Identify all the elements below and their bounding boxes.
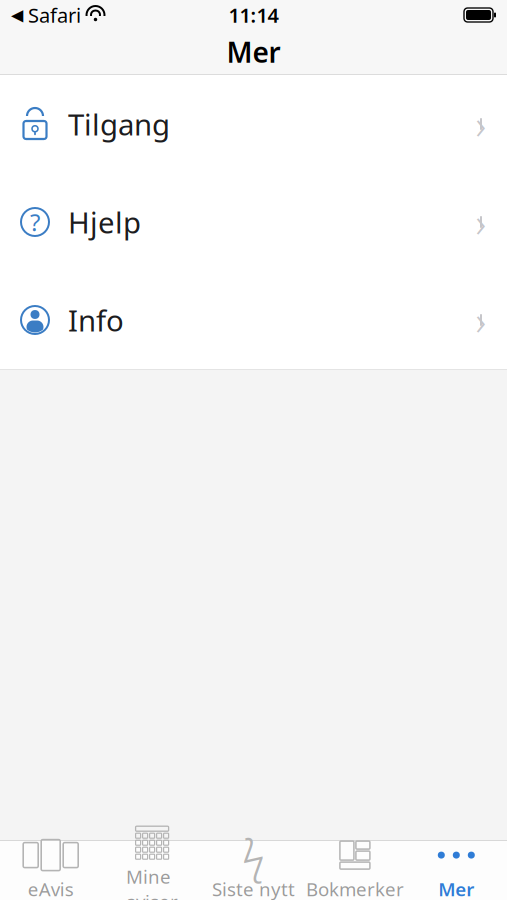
button[interactable]: Info (0, 271, 507, 369)
staticText: Tilgang (68, 104, 170, 143)
staticText: Bokmerker (306, 877, 404, 900)
staticText: Info (68, 300, 124, 339)
button[interactable]: Bokmerker (304, 841, 406, 900)
staticText: Mer (226, 33, 280, 71)
staticText: eAvis (28, 877, 74, 900)
button[interactable]: Mine aviser (101, 841, 203, 900)
staticText: › (475, 293, 486, 346)
staticText: › (475, 97, 486, 150)
button[interactable]: Tilgang (0, 75, 507, 173)
button[interactable]: Mer (406, 841, 507, 900)
staticText: Mine aviser (126, 864, 178, 900)
staticText: Siste nytt (212, 877, 295, 900)
button[interactable]: ϟ (203, 841, 304, 900)
staticText: 11:14 (228, 2, 278, 28)
staticText: › (475, 195, 486, 248)
staticText: Hjelp (68, 202, 141, 241)
button[interactable]: eAvis (0, 841, 101, 900)
staticText: ? (30, 206, 40, 238)
button[interactable]: ? (0, 173, 507, 271)
staticText: ϟ (242, 825, 265, 885)
staticText: Safari (28, 2, 81, 28)
staticText: Mer (438, 877, 474, 900)
staticText: ◀ (11, 6, 23, 24)
